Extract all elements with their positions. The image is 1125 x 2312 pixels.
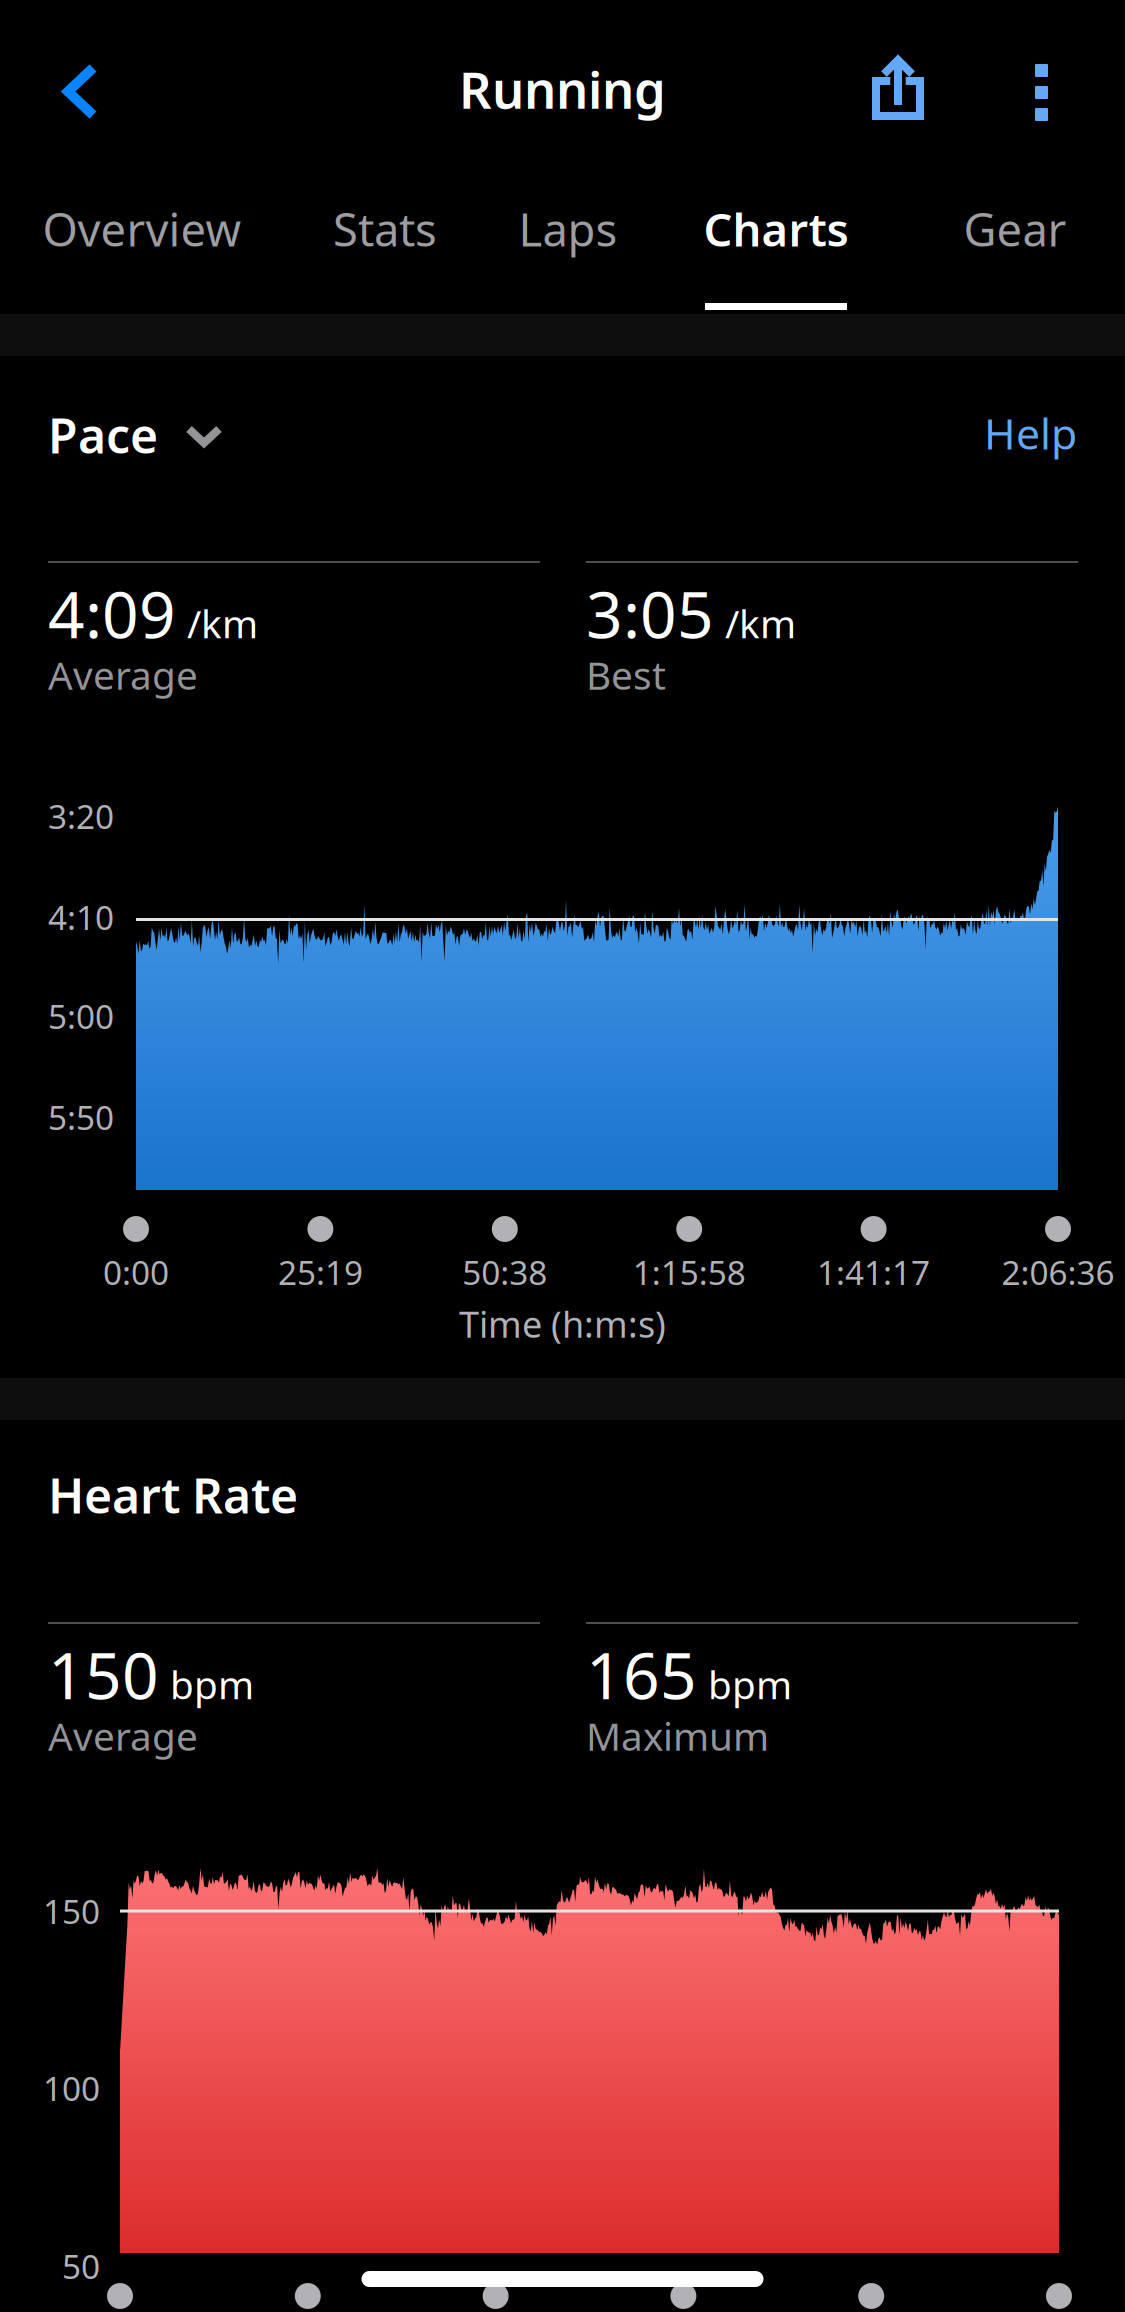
staticText: 25:19 [278, 1250, 363, 1294]
staticText: Gear [963, 199, 1066, 259]
staticText: 1:15:58 [633, 1250, 746, 1294]
staticText: 165 [586, 1632, 697, 1717]
staticText: 1:41:17 [817, 1250, 930, 1294]
staticText: Average [48, 649, 198, 700]
staticText: Time (h:m:s) [459, 1300, 666, 1348]
button[interactable]: Overview [26, 173, 258, 285]
staticText: 3:20 [48, 794, 114, 838]
button[interactable]: Share [847, 31, 957, 141]
staticText: Heart Rate [48, 1463, 298, 1527]
staticText: Maximum [586, 1710, 769, 1761]
staticText: /km [187, 598, 258, 649]
button[interactable]: Help [937, 398, 1077, 468]
staticText: 4:09 [48, 571, 176, 656]
staticText: Running [459, 55, 666, 123]
button[interactable]: Stats [312, 173, 458, 285]
staticText: 150 [43, 1889, 100, 1933]
button[interactable]: Gear [946, 173, 1084, 285]
staticText: bpm [170, 1659, 254, 1710]
staticText: Stats [333, 199, 437, 259]
button[interactable]: Charts [686, 173, 866, 285]
staticText: 5:00 [48, 994, 114, 1038]
staticText: Help [984, 405, 1077, 461]
staticText: 0:00 [103, 1250, 169, 1294]
staticText: Charts [703, 199, 848, 259]
staticText: Pace [48, 403, 158, 467]
staticText: Best [586, 649, 666, 700]
staticText: 4:10 [48, 895, 114, 939]
staticText: 2:06:36 [1001, 1250, 1114, 1294]
staticText: 100 [43, 2066, 100, 2110]
staticText: 150 [48, 1632, 159, 1717]
button[interactable]: Laps [498, 173, 638, 285]
staticText: bpm [708, 1659, 792, 1710]
staticText: Average [48, 1710, 198, 1761]
staticText: Overview [42, 199, 241, 259]
staticText: 5:50 [48, 1095, 114, 1139]
staticText: Laps [518, 199, 617, 259]
staticText: 50 [62, 2244, 100, 2288]
button[interactable]: More options [991, 33, 1091, 143]
button[interactable]: Back [26, 37, 136, 147]
button[interactable]: Pace [48, 389, 248, 459]
staticText: /km [725, 598, 796, 649]
staticText: 50:38 [462, 1250, 547, 1294]
staticText: 3:05 [586, 571, 714, 656]
